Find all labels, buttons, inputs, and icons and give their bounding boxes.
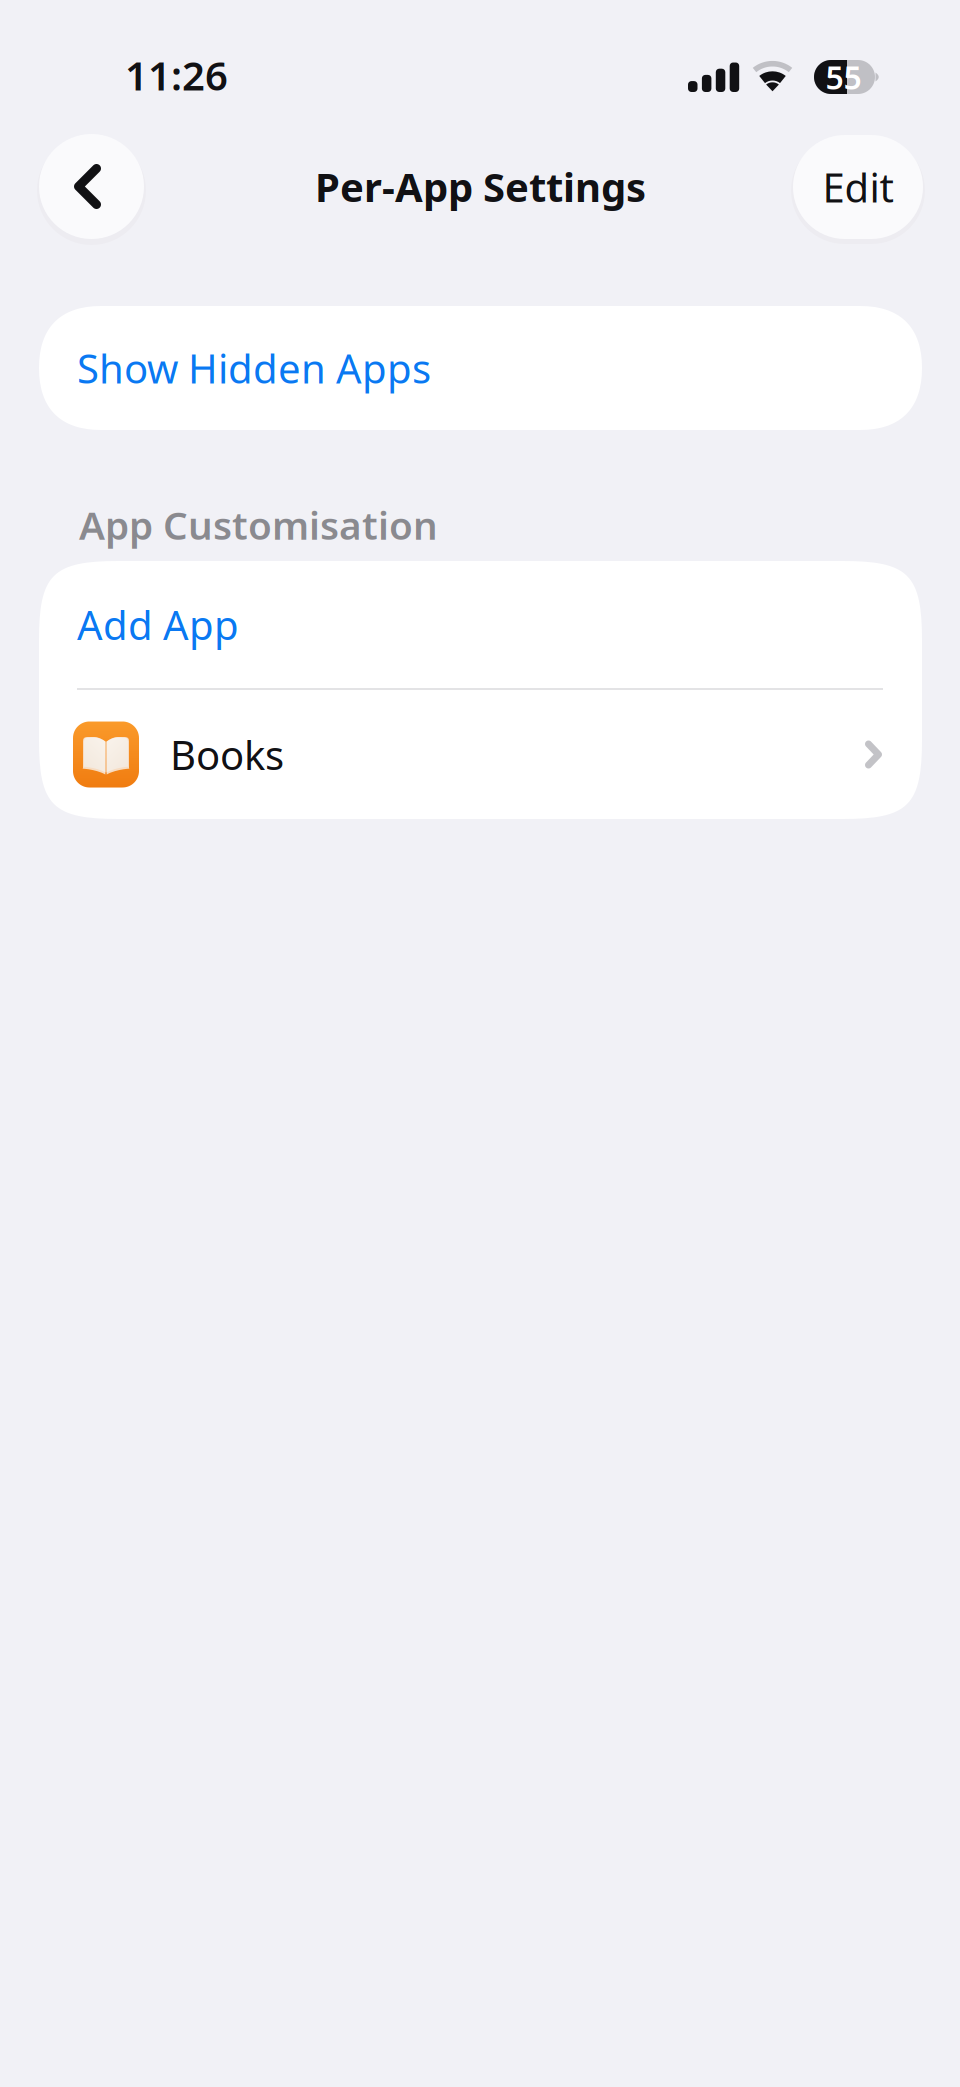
staticText: Per-App Settings [315, 160, 646, 213]
button[interactable]: Edit [793, 135, 923, 239]
button[interactable]: Show Hidden Apps [39, 306, 922, 430]
staticText: Show Hidden Apps [77, 341, 431, 394]
staticText: Add App [77, 598, 239, 651]
staticText: App Customisation [79, 499, 438, 550]
staticText: 11:26 [125, 48, 228, 102]
button[interactable]: Back [39, 134, 144, 239]
staticText: 55 [825, 56, 861, 98]
button[interactable]: Add App [39, 561, 922, 688]
staticText: Books [170, 728, 284, 781]
staticText: Edit [822, 160, 893, 213]
button[interactable]: Books [39, 690, 922, 819]
